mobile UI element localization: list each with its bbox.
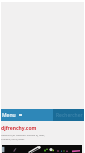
button[interactable]: Rechercher xyxy=(53,109,84,121)
staticText: Webzine DJ et Musiques: mixtape DJ, news… xyxy=(1,134,45,137)
button[interactable]: Featured article photo xyxy=(2,145,82,153)
staticText: Menu xyxy=(2,112,16,119)
button[interactable]: Menu xyxy=(2,109,22,121)
staticText: Rechercher xyxy=(56,112,83,119)
staticText: djfrenchy.com xyxy=(1,125,37,132)
staticText: Clubbing, top DJ mixes xyxy=(1,138,25,141)
